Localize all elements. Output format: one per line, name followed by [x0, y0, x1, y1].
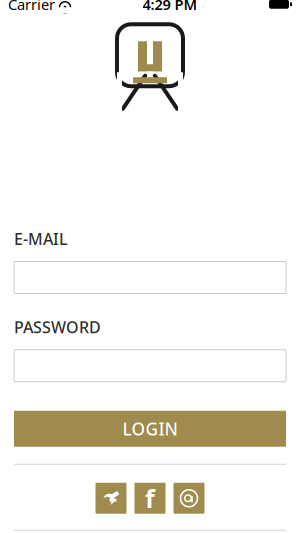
button[interactable]: Twitter: [95, 483, 126, 514]
staticText: Carrier: [8, 0, 55, 14]
button[interactable]: Password field: [14, 350, 286, 382]
staticText: PASSWORD: [14, 316, 101, 338]
button[interactable]: LOGIN: [14, 411, 286, 447]
staticText: 4:29 PM: [142, 0, 197, 14]
staticText: LOGIN: [122, 417, 177, 440]
staticText: E-MAIL: [14, 228, 68, 249]
staticText: f: [145, 481, 155, 515]
button[interactable]: Facebook: [134, 483, 165, 514]
button[interactable]: Email: [173, 483, 204, 514]
button[interactable]: E-mail field: [14, 261, 286, 293]
